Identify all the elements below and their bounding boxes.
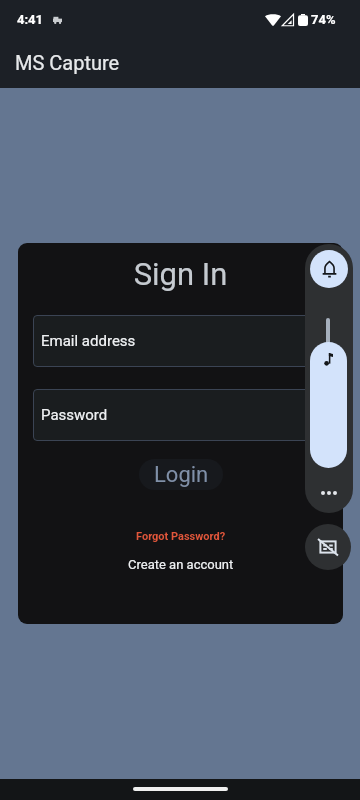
staticText: 74% (311, 12, 336, 27)
staticText: Forgot Password? (136, 530, 226, 543)
staticText: Sign In (18, 256, 343, 292)
staticText: MS Capture (15, 51, 120, 74)
button[interactable]: Forgot Password? (128, 528, 234, 545)
button[interactable]: More volume settings (313, 483, 345, 503)
staticText: Login (154, 462, 209, 488)
staticText: 4:41 (17, 12, 44, 27)
button[interactable]: Password (33, 389, 328, 441)
staticText: Password (41, 406, 108, 424)
button[interactable]: Login (139, 459, 223, 490)
button[interactable]: Mute (305, 524, 351, 570)
button[interactable]: Email address (33, 315, 328, 367)
button[interactable]: Create an account (120, 555, 242, 574)
button[interactable]: Ringer mode (310, 250, 348, 288)
staticText: Email address (41, 332, 136, 350)
staticText: Create an account (128, 557, 234, 572)
button[interactable]: Media volume (310, 342, 347, 468)
